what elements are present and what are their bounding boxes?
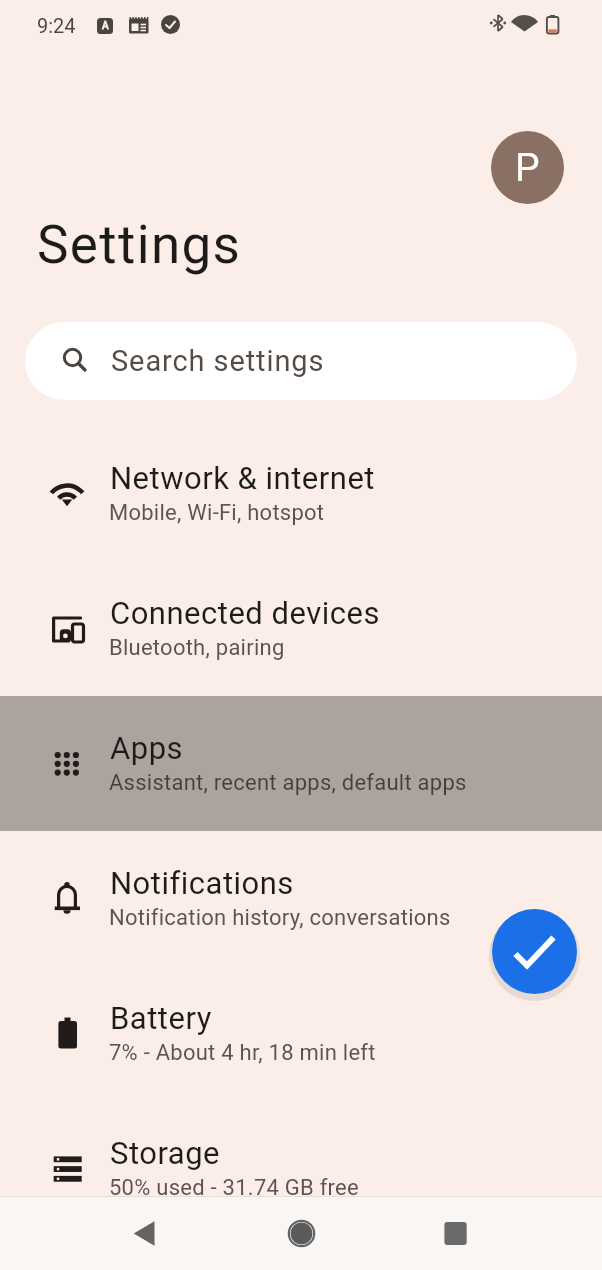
- staticText: Connected devices: [110, 595, 380, 631]
- button[interactable]: Apps: [0, 696, 602, 831]
- button[interactable]: Storage: [0, 1101, 602, 1236]
- button[interactable]: [114, 1203, 174, 1263]
- button[interactable]: [492, 909, 577, 994]
- staticText: Network & internet: [110, 460, 375, 496]
- button[interactable]: [271, 1203, 331, 1263]
- staticText: Battery: [110, 1000, 212, 1036]
- staticText: Settings: [37, 214, 242, 276]
- staticText: 50% used - 31.74 GB free: [109, 1175, 359, 1201]
- button[interactable]: Notifications: [0, 831, 602, 966]
- staticText: Storage: [110, 1135, 221, 1171]
- staticText: Apps: [110, 730, 184, 766]
- staticText: Notifications: [110, 865, 294, 901]
- staticText: Search settings: [111, 344, 325, 378]
- staticText: 9:24: [37, 14, 76, 37]
- button[interactable]: [425, 1203, 485, 1263]
- button[interactable]: Connected devices: [0, 561, 602, 696]
- staticText: Notification history, conversations: [109, 905, 451, 931]
- button[interactable]: Battery: [0, 966, 602, 1101]
- button[interactable]: Search settings: [25, 322, 577, 400]
- button[interactable]: P: [491, 131, 564, 204]
- staticText: Mobile, Wi-Fi, hotspot: [109, 500, 325, 526]
- button[interactable]: Network & internet: [0, 426, 602, 561]
- staticText: Bluetooth, pairing: [109, 635, 285, 661]
- staticText: A: [102, 20, 109, 32]
- staticText: 7% - About 4 hr, 18 min left: [109, 1040, 376, 1066]
- staticText: P: [515, 145, 540, 191]
- staticText: Assistant, recent apps, default apps: [109, 770, 467, 796]
